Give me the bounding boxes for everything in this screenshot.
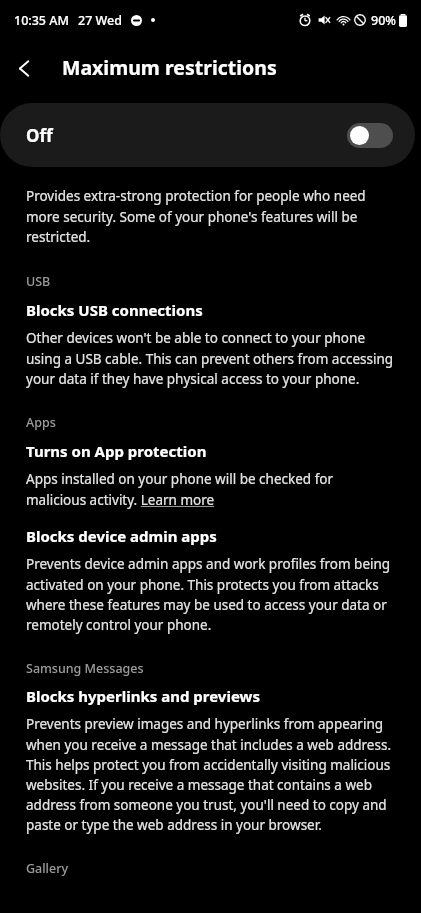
staticText: Other devices won't be able to connect t… — [26, 329, 396, 388]
staticText: 10:35 AM — [14, 12, 69, 29]
staticText: Turns on App protection — [26, 441, 207, 461]
button[interactable]: Back — [0, 44, 48, 92]
button[interactable]: Off — [0, 103, 415, 167]
staticText: Blocks hyperlinks and previews — [26, 686, 260, 706]
staticText: 27 Wed — [78, 12, 122, 29]
staticText: Prevents preview images and hyperlinks f… — [26, 715, 396, 834]
staticText: Samsung Messages — [26, 660, 144, 677]
staticText: Blocks device admin apps — [26, 526, 217, 546]
staticText: Off — [26, 124, 53, 147]
staticText: Gallery — [26, 860, 69, 877]
staticText: 90% — [371, 12, 396, 29]
staticText: Prevents device admin apps and work prof… — [26, 555, 396, 634]
staticText: USB — [26, 273, 51, 290]
staticText: Blocks USB connections — [26, 300, 203, 320]
staticText: Provides extra-strong protection for peo… — [26, 187, 396, 246]
staticText: Apps installed on your phone will be che… — [26, 470, 396, 509]
staticText: Apps — [26, 414, 56, 431]
staticText: Maximum restrictions — [62, 54, 277, 81]
